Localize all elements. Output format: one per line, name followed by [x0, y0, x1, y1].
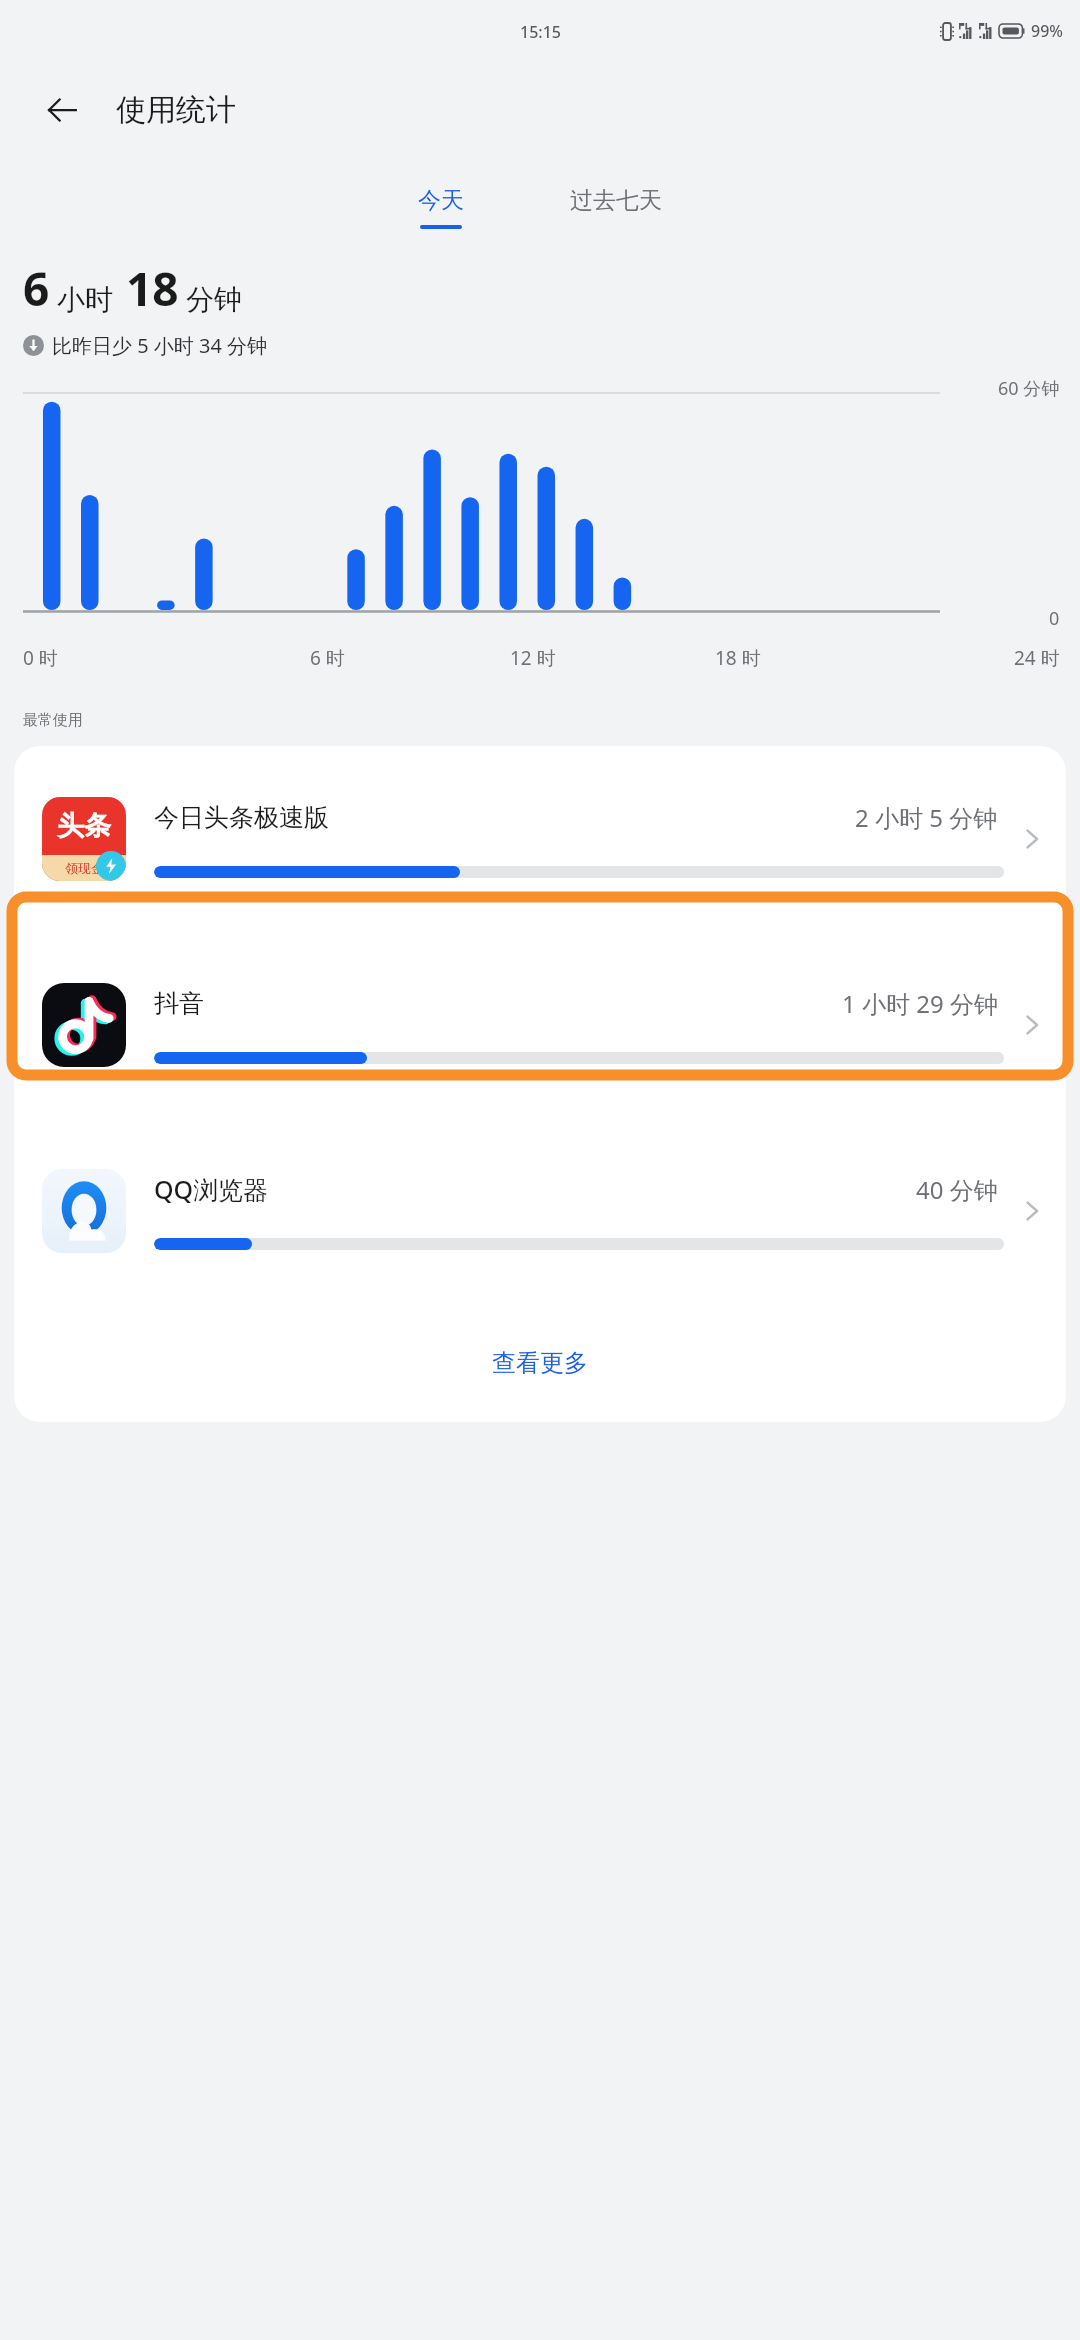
staticText: 今日头条极速版	[154, 802, 329, 833]
staticText: 过去七天	[570, 186, 662, 215]
button[interactable]: 头条	[14, 746, 1066, 932]
staticText: 比昨日少 5 小时 34 分钟	[52, 332, 268, 359]
staticText: 18	[126, 257, 179, 320]
staticText: 12 时	[510, 645, 556, 671]
staticText: 使用统计	[116, 91, 236, 129]
staticText: 头条	[57, 809, 111, 843]
staticText: 2 小时 5 分钟	[855, 801, 998, 834]
staticText: 最常使用	[23, 711, 83, 730]
staticText: 15:15	[520, 21, 561, 43]
button[interactable]: QQ浏览器	[14, 1118, 1066, 1304]
staticText: 抖音	[154, 988, 204, 1019]
button[interactable]: 返回	[34, 82, 90, 138]
staticText: 领现金	[65, 860, 104, 876]
staticText: 60 分钟	[998, 376, 1060, 401]
button[interactable]: 今天	[396, 180, 486, 235]
staticText: 查看更多	[492, 1348, 588, 1378]
staticText: 24 时	[1014, 645, 1060, 671]
staticText: 分钟	[186, 282, 242, 317]
staticText: 小时	[57, 282, 113, 317]
staticText: QQ浏览器	[154, 1172, 269, 1206]
staticText: 1 小时 29 分钟	[842, 987, 998, 1020]
staticText: 今天	[418, 186, 464, 215]
staticText: 0	[1049, 606, 1060, 631]
button[interactable]: 查看更多	[14, 1304, 1066, 1422]
staticText: 40 分钟	[916, 1173, 998, 1206]
staticText: 18 时	[715, 645, 761, 671]
staticText: 6 时	[310, 645, 345, 671]
staticText: 0 时	[23, 645, 58, 671]
staticText: 6	[23, 257, 50, 320]
button[interactable]: 抖音	[14, 932, 1066, 1118]
button[interactable]: 过去七天	[548, 180, 684, 235]
staticText: 99%	[1031, 20, 1063, 42]
